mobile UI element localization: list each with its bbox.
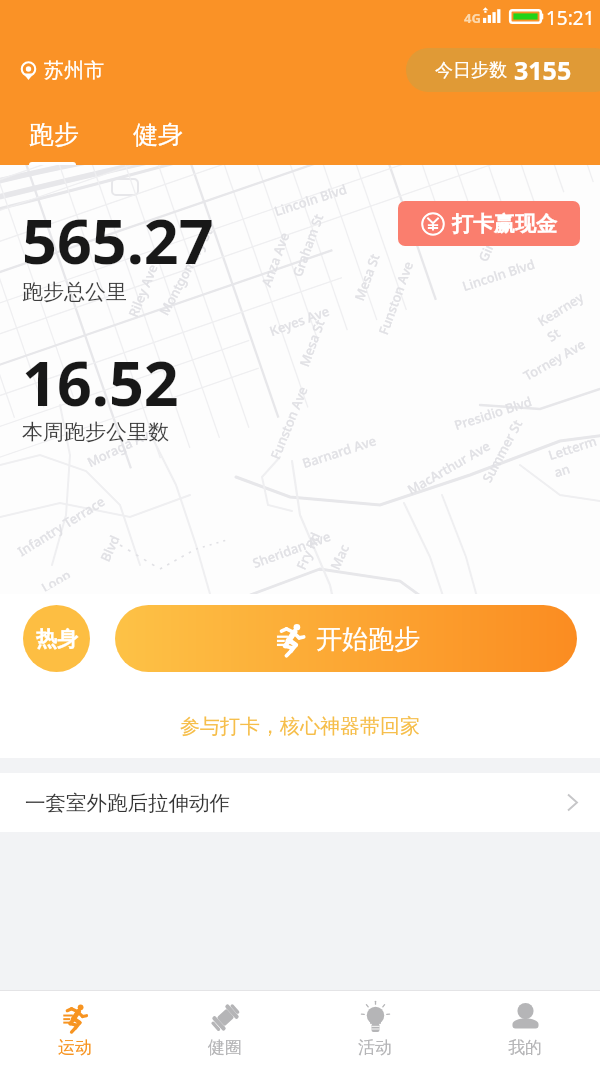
button[interactable]: 活动 <box>300 991 450 1067</box>
staticText: 开始跑步 <box>316 623 420 656</box>
staticText: 16.52 <box>22 341 179 424</box>
button[interactable]: 健身 <box>115 108 200 165</box>
staticText: 15:21 <box>546 5 595 31</box>
button[interactable]: 运动 <box>0 991 150 1067</box>
staticText: 苏州市 <box>44 58 104 83</box>
button[interactable]: 打卡赢现金 <box>398 201 580 246</box>
staticText: 一套室外跑后拉伸动作 <box>25 790 230 816</box>
staticText: 活动 <box>358 1037 392 1058</box>
staticText: 4G <box>464 9 481 27</box>
staticText: 本周跑步公里数 <box>22 419 169 445</box>
button[interactable]: 今日步数 <box>406 48 600 92</box>
button[interactable]: 开始跑步 <box>115 605 577 672</box>
staticText: 跑步总公里 <box>22 279 127 305</box>
button[interactable]: 健圈 <box>150 991 300 1067</box>
button[interactable]: 我的 <box>450 991 600 1067</box>
staticText: 565.27 <box>22 199 214 282</box>
staticText: 今日步数 <box>435 59 507 82</box>
staticText: 运动 <box>58 1037 92 1058</box>
staticText: 跑步 <box>29 119 79 150</box>
staticText: 健身 <box>133 119 183 150</box>
staticText: 打卡赢现金 <box>452 211 557 237</box>
staticText: 我的 <box>508 1037 542 1058</box>
button[interactable]: 跑步 <box>11 108 96 165</box>
staticText: 参与打卡，核心神器带回家 <box>180 714 420 739</box>
staticText: 3155 <box>514 53 572 87</box>
button[interactable]: 一套室外跑后拉伸动作 <box>0 773 600 832</box>
staticText: 热身 <box>36 626 78 652</box>
staticText: 健圈 <box>208 1037 242 1058</box>
button[interactable]: 热身 <box>23 605 90 672</box>
